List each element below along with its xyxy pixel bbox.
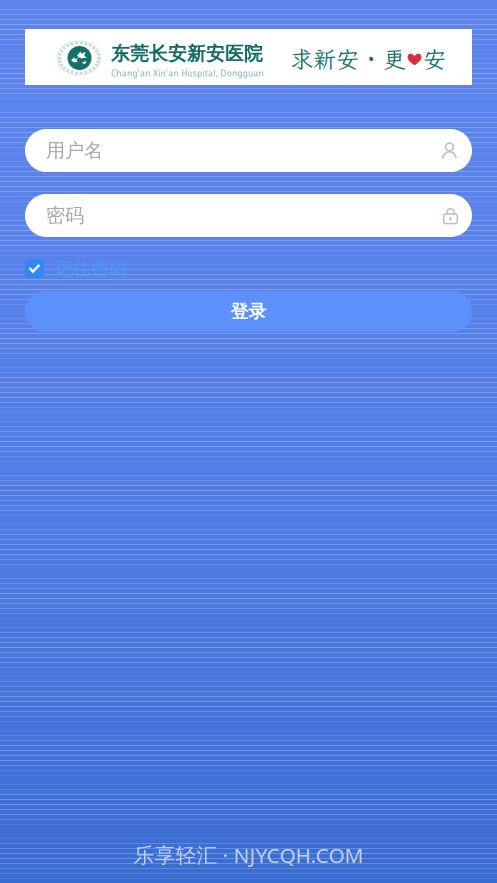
staticText: Chang'an Xin'an Hospital, Dongguan [111,67,264,79]
staticText: 记住密码 [55,258,127,280]
staticText: 求新安 · 更 [290,44,406,74]
staticText: 乐享轻汇 · NJYCQH.COM [133,841,363,869]
staticText: 安 [423,44,446,74]
button[interactable]: 登录 [25,291,472,332]
staticText: 密码 [46,203,84,228]
staticText: 登录 [230,300,266,323]
button[interactable]: 记住密码 [25,258,127,280]
button[interactable]: 密码 [25,194,472,237]
button[interactable]: 用户名 [25,129,472,172]
staticText: 东莞长安新安医院 [111,42,263,65]
staticText: 用户名 [46,138,103,163]
